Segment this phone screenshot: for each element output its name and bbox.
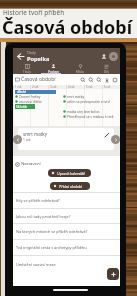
staticText: Tituly bbox=[27, 50, 36, 55]
staticText: Místa bbox=[76, 70, 84, 74]
button[interactable]: Upravit kalendář bbox=[48, 169, 91, 177]
staticText: 3 rok bbox=[50, 85, 57, 89]
button[interactable]: Jakou roli tady prostředí hraje? bbox=[13, 208, 120, 223]
staticText: 1 rok bbox=[15, 85, 22, 89]
staticText: otčím se prokopnutím o tvrd bbox=[67, 100, 110, 104]
staticText: 4 rok bbox=[68, 85, 75, 89]
staticText: 5 rok bbox=[86, 85, 93, 89]
staticText: Upravit kalendář bbox=[57, 171, 86, 176]
staticText: 2 rok bbox=[32, 85, 39, 89]
staticText: Nastavení bbox=[21, 161, 41, 167]
button[interactable]: Postavy bbox=[41, 64, 65, 74]
staticText: matka otej laterbolios bbox=[67, 110, 100, 114]
button[interactable]: Děj bbox=[94, 64, 118, 74]
staticText: Na kterých místech se příběh odehrává? bbox=[16, 229, 88, 234]
staticText: 6 rok bbox=[104, 85, 111, 89]
button[interactable]: Přidat období bbox=[50, 182, 90, 190]
staticText: Přidat období bbox=[59, 184, 82, 189]
staticText: Zrození hrdiny bbox=[19, 95, 41, 99]
staticText: Tvá originální cesta s archetypy příběhu bbox=[16, 245, 87, 250]
button[interactable]: Zoom bbox=[79, 76, 87, 84]
staticText: Jakou roli tady prostředí hraje? bbox=[16, 214, 71, 219]
staticText: Časová období bbox=[2, 15, 133, 40]
staticText: Kdy se příběh odehrává? bbox=[16, 198, 60, 203]
button[interactable]: Download bbox=[103, 76, 111, 84]
button[interactable]: Kdy se příběh odehrává? bbox=[13, 192, 120, 208]
staticText: smrt matky bbox=[67, 95, 85, 99]
staticText: Tituly bbox=[23, 70, 31, 74]
staticText: smrt matky bbox=[23, 131, 48, 137]
button[interactable]: Back bbox=[14, 50, 26, 62]
button[interactable]: Tvá originální cesta s archetypy příběhu bbox=[13, 239, 120, 255]
button[interactable]: Previous bbox=[13, 135, 22, 144]
staticText: otcovství dítěte bbox=[19, 100, 42, 104]
button[interactable]: Tituly bbox=[15, 64, 39, 74]
button[interactable]: Zoom bbox=[95, 76, 103, 84]
button[interactable]: Profile bbox=[99, 52, 108, 61]
button[interactable]: Sít krále Cloud bbox=[15, 104, 35, 109]
button[interactable]: Na kterých místech se příběh odehrává? bbox=[13, 223, 120, 239]
staticText: dětství bbox=[17, 90, 26, 94]
button[interactable]: Umístění souvisí meze bbox=[13, 255, 120, 272]
staticText: Umístění souvisí meze bbox=[16, 262, 56, 267]
staticText: 1 rok bbox=[23, 138, 31, 142]
button[interactable]: Místa bbox=[68, 64, 92, 74]
staticText: Popelka bbox=[27, 55, 50, 63]
staticText: Historie tvoří příběh bbox=[3, 8, 65, 17]
staticText: Časová období bbox=[21, 76, 56, 83]
button[interactable]: Next bbox=[111, 135, 120, 144]
button[interactable]: Account bbox=[109, 52, 118, 61]
staticText: Děj bbox=[104, 70, 109, 74]
staticText: Sít krále Cloud bbox=[16, 105, 35, 109]
button[interactable]: More bbox=[111, 76, 119, 84]
button[interactable]: Add bbox=[107, 268, 119, 280]
button[interactable]: Zoom bbox=[87, 76, 95, 84]
button[interactable]: smrt matky bbox=[18, 128, 114, 150]
staticText: Postavy bbox=[48, 70, 59, 74]
staticText: Přestěhovali se s matkou k tetě bbox=[67, 115, 114, 119]
